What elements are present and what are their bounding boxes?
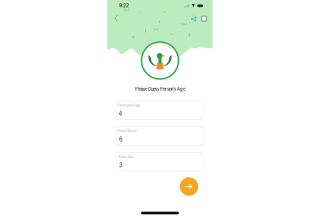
- staticText: Enter Day: [119, 155, 134, 159]
- staticText: 4: [118, 110, 122, 117]
- button[interactable]: Screenshot: [199, 14, 209, 23]
- button[interactable]: Next: [180, 177, 198, 196]
- staticText: Please Guess Person's Age: [135, 87, 185, 92]
- staticText: Enter Month: [118, 129, 137, 133]
- button[interactable]: Back: [112, 12, 121, 24]
- staticText: 9:22: [119, 3, 129, 8]
- staticText: 3: [119, 162, 122, 169]
- button[interactable]: Share: [189, 14, 199, 24]
- button[interactable]: Estimated Age: [116, 101, 204, 119]
- button[interactable]: Enter Day: [116, 153, 204, 171]
- button[interactable]: Enter Month: [116, 127, 204, 145]
- staticText: 6: [119, 136, 122, 143]
- staticText: Estimated Age: [117, 103, 140, 107]
